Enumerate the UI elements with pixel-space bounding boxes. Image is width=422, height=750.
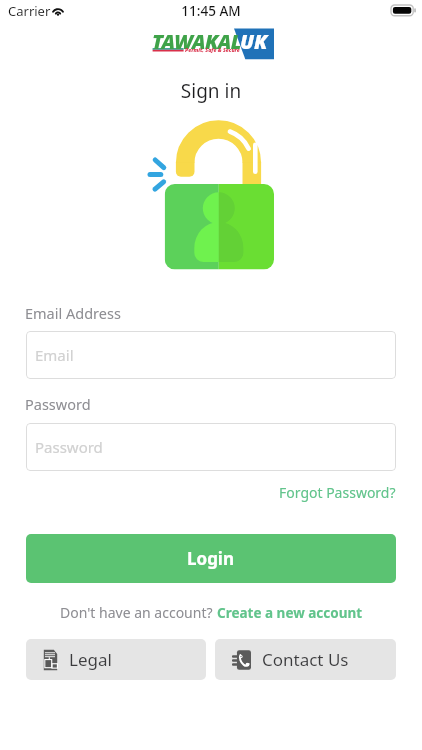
staticText: Email Address bbox=[25, 303, 121, 323]
staticText: UK bbox=[240, 28, 268, 55]
button[interactable]: Legal document bbox=[26, 639, 206, 680]
other: Legal document bbox=[43, 649, 58, 671]
staticText: 11:45 AM bbox=[0, 2, 422, 20]
staticText: Password bbox=[25, 394, 91, 414]
button[interactable]: Login bbox=[26, 534, 396, 583]
staticText: Carrier bbox=[8, 2, 51, 20]
staticText: TAWAKAL bbox=[152, 28, 241, 55]
button[interactable]: Forgot Password? bbox=[279, 483, 396, 502]
staticText: Password bbox=[35, 437, 103, 457]
staticText: Contact Us bbox=[262, 648, 349, 671]
staticText: Login bbox=[187, 547, 235, 570]
staticText: Permit, Safe & Secure bbox=[185, 46, 240, 53]
staticText: Forgot Password? bbox=[279, 483, 396, 502]
button[interactable]: Contact Us bbox=[215, 639, 396, 680]
staticText: Email bbox=[35, 345, 74, 365]
staticText: Legal bbox=[69, 648, 112, 671]
other: Contact Us bbox=[232, 649, 251, 671]
button[interactable]: Password bbox=[26, 423, 396, 471]
button[interactable]: Email bbox=[26, 331, 396, 379]
staticText: Don't have an account? bbox=[60, 603, 217, 622]
staticText: Create a new account bbox=[217, 604, 363, 622]
button[interactable]: Create a new account bbox=[217, 604, 363, 622]
staticText: Sign in bbox=[0, 78, 422, 104]
